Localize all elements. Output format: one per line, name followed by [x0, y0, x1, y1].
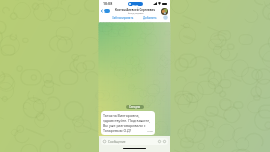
staticText: Вы уже разговаривали с — [103, 123, 146, 128]
staticText: 1 235 — [104, 9, 110, 13]
staticText: Сегодня — [129, 105, 141, 109]
staticText: здравствуйте. Подскажите, — [103, 118, 151, 123]
staticText: 10:08 — [147, 130, 153, 133]
other: Voice message — [163, 140, 166, 143]
staticText: 10:08 — [103, 1, 113, 6]
staticText: был(а) недавно — [128, 12, 144, 15]
staticText: Костин Алексей Сергеевич — [115, 8, 156, 12]
staticText: Добавить — [143, 16, 157, 20]
button[interactable]: Добавить — [143, 16, 157, 20]
button[interactable]: Emoji — [101, 138, 168, 145]
staticText: 00:14 — [132, 3, 139, 6]
button[interactable]: More options — [163, 15, 168, 20]
staticText: Токаревым О.Д? — [103, 128, 132, 133]
button[interactable]: Back — [100, 9, 110, 13]
other: Attach — [158, 140, 161, 143]
other: Emoji — [103, 140, 106, 143]
button[interactable]: Заблокировать — [112, 16, 134, 20]
button[interactable]: Profile photo — [161, 8, 168, 15]
staticText: Заблокировать — [112, 16, 134, 20]
staticText: Татьяна Викторовна, — [103, 113, 140, 118]
staticText: Сообщение — [108, 140, 126, 144]
